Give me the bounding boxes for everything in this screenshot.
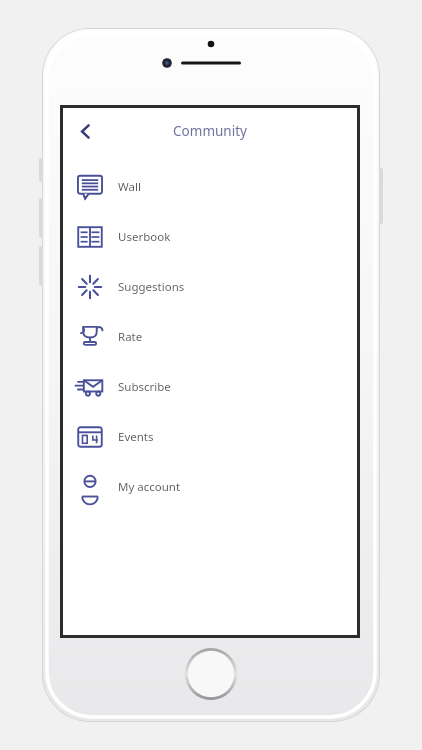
- button[interactable]: Events: [63, 412, 357, 462]
- staticText: Wall: [118, 179, 141, 195]
- button[interactable]: Wall: [63, 162, 357, 212]
- staticText: Suggestions: [118, 279, 185, 295]
- button[interactable]: My account: [63, 462, 357, 512]
- staticText: Userbook: [118, 229, 171, 245]
- button[interactable]: Rate: [63, 312, 357, 362]
- button[interactable]: Suggestions: [63, 262, 357, 312]
- staticText: Subscribe: [118, 379, 171, 395]
- button[interactable]: Back: [67, 113, 103, 149]
- staticText: My account: [118, 479, 181, 495]
- button[interactable]: Subscribe: [63, 362, 357, 412]
- staticText: Events: [118, 429, 154, 445]
- staticText: Community: [173, 122, 247, 140]
- staticText: Rate: [118, 329, 143, 345]
- button[interactable]: Userbook: [63, 212, 357, 262]
